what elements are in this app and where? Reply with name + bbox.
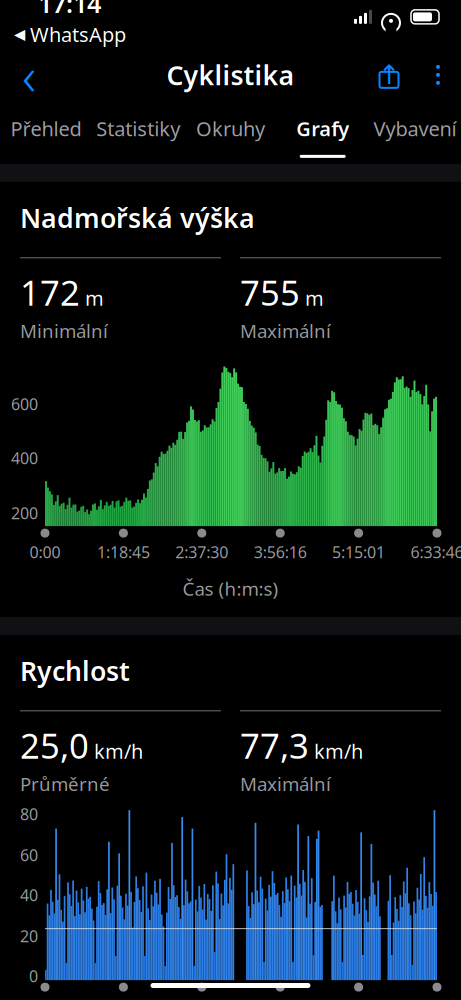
staticText: 2:37:30 [175,541,228,563]
staticText: 400 [11,447,38,469]
staticText: ↑ [378,60,400,90]
button[interactable]: Share [363,48,415,102]
staticText: 200 [11,502,38,524]
button[interactable]: Okruhy [184,102,277,164]
staticText: Průměrné [20,771,110,796]
staticText: Okruhy [196,115,265,142]
staticText: 755 [240,269,300,315]
staticText: 17:14 [38,0,101,20]
button[interactable]: Statistiky [92,102,184,164]
staticText: 0:00 [29,541,60,563]
staticText: 25,0 [20,722,89,768]
button[interactable]: Grafy [277,102,369,164]
button[interactable]: Přehled [0,102,92,164]
staticText: Cyklistika [166,57,294,93]
staticText: 600 [11,393,38,415]
staticText: 3:56:16 [254,541,307,563]
staticText: km/h [94,738,143,764]
staticText: 40 [20,884,38,906]
staticText: Grafy [296,115,349,142]
staticText: Rychlost [20,653,130,688]
button[interactable]: More options [415,48,461,102]
staticText: Nadmořská výška [20,200,255,235]
staticText: Statistiky [96,115,180,142]
staticText: 20 [20,925,38,947]
staticText: 172 [20,269,80,315]
button[interactable]: Vybavení [369,102,461,164]
staticText: m [85,285,104,311]
staticText: Maximální [240,318,331,343]
staticText: 1:18:45 [97,541,150,563]
staticText: Přehled [11,115,82,142]
staticText: 77,3 [240,722,309,768]
staticText: 5:15:01 [332,541,385,563]
staticText: 0 [29,965,38,987]
staticText: 80 [20,803,38,825]
staticText: ◀ [14,26,25,42]
staticText: km/h [314,738,363,764]
staticText: ‹ [22,39,36,110]
staticText: m [305,285,324,311]
staticText: Minimální [20,318,108,343]
staticText: WhatsApp [30,21,126,47]
button[interactable]: Back [0,48,58,102]
staticText: Vybavení [373,115,456,142]
staticText: Čas (h:m:s) [182,576,278,601]
staticText: 6:33:46 [410,541,461,563]
staticText: Maximální [240,771,331,796]
staticText: 60 [20,844,38,866]
